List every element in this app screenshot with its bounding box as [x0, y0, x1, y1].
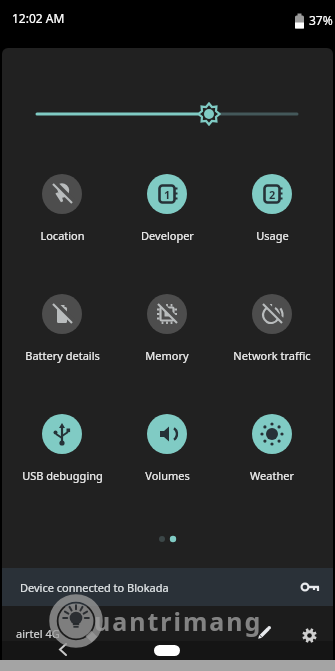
button[interactable]: Volumes	[115, 410, 219, 488]
staticText: USB debugging	[22, 468, 103, 483]
staticText: Location	[40, 228, 85, 243]
button[interactable]: Weather	[220, 410, 324, 488]
button[interactable]	[295, 622, 323, 648]
button[interactable]: USB debugging	[10, 410, 114, 488]
staticText: 1	[164, 187, 171, 202]
staticText: Volumes	[145, 468, 190, 483]
staticText: 2	[269, 187, 276, 202]
staticText: 37%	[309, 12, 333, 28]
button[interactable]: Device connected to Blokada	[2, 568, 333, 606]
staticText: 12:02 AM	[12, 10, 65, 26]
staticText: Usage	[256, 228, 289, 243]
button[interactable]	[154, 645, 180, 656]
button[interactable]	[57, 643, 69, 656]
button[interactable]: 1	[115, 170, 219, 248]
staticText: Device connected to Blokada	[20, 580, 169, 595]
staticText: Battery details	[25, 348, 100, 363]
staticText: Memory	[145, 348, 189, 363]
button[interactable]	[250, 620, 278, 646]
button[interactable]: Memory	[115, 290, 219, 368]
button[interactable]: 2	[220, 170, 324, 248]
button[interactable]: Battery details	[10, 290, 114, 368]
button[interactable]: Location	[10, 170, 114, 248]
staticText: airtel 4G	[16, 626, 60, 641]
button[interactable]	[2, 48, 333, 568]
button[interactable]: Network traffic	[220, 290, 324, 368]
staticText: Weather	[250, 468, 294, 483]
staticText: Developer	[141, 228, 194, 243]
staticText: Network traffic	[233, 348, 311, 363]
staticText: uantrimang	[94, 604, 263, 638]
